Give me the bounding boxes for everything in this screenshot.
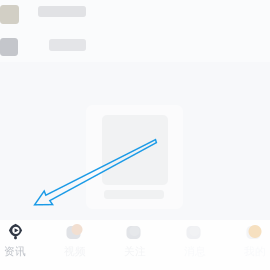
staticText: 关注 — [124, 245, 146, 258]
staticText: 视频 — [64, 245, 86, 258]
button[interactable] — [0, 0, 270, 31]
staticText: 资讯 — [4, 245, 26, 258]
button[interactable]: 消息 — [180, 220, 210, 270]
button[interactable]: 资讯 — [0, 220, 30, 270]
button[interactable]: 我的 — [240, 220, 270, 270]
button[interactable]: 视频 — [60, 220, 90, 270]
button[interactable] — [0, 31, 270, 62]
button[interactable]: 关注 — [120, 220, 150, 270]
